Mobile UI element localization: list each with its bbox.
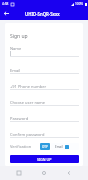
button[interactable]: Home — [31, 166, 56, 180]
staticText: +91 Phone number — [10, 84, 47, 89]
staticText: Password — [10, 116, 29, 121]
staticText: Verification — [10, 144, 32, 149]
staticText: SIGN UP — [37, 157, 52, 162]
staticText: UHID-SnQR-Sxxx — [25, 11, 60, 17]
staticText: 100% — [75, 2, 84, 6]
button[interactable]: Back — [56, 166, 81, 180]
button[interactable]: OTP — [40, 143, 50, 150]
staticText: Email — [10, 68, 21, 73]
button[interactable]: Email — [51, 143, 79, 150]
staticText: Confirm password — [10, 132, 45, 137]
button[interactable]: Back — [1, 8, 12, 19]
staticText: Name — [10, 46, 22, 51]
staticText: Sign up — [10, 33, 28, 40]
staticText: OTP — [42, 145, 48, 149]
button[interactable]: Recents — [7, 166, 31, 180]
staticText: Choose user name — [10, 100, 46, 105]
staticText: 4:58 — [2, 2, 9, 6]
staticText: Email — [55, 145, 63, 149]
button[interactable]: SIGN UP — [10, 155, 79, 163]
